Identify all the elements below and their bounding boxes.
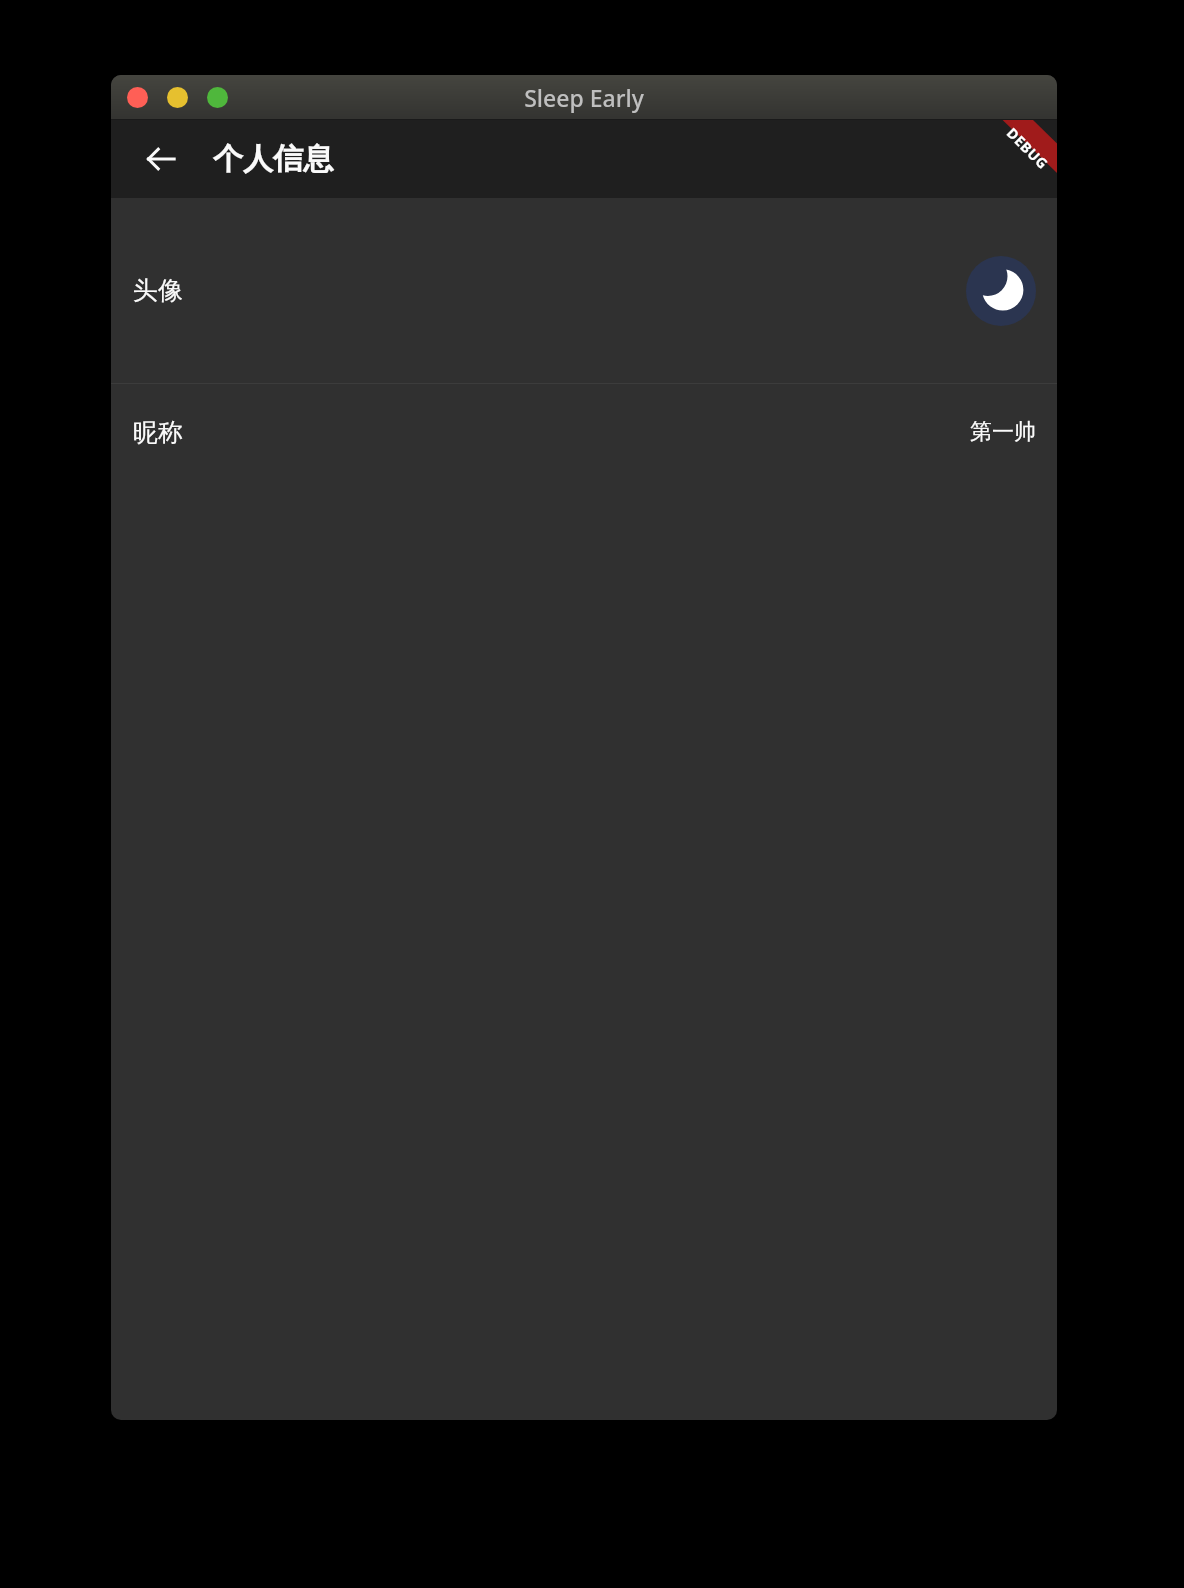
button[interactable]: Maximize [207, 87, 228, 108]
button[interactable]: Close [127, 87, 148, 108]
button[interactable]: Back [135, 133, 187, 185]
staticText: 昵称 [133, 417, 183, 448]
staticText: DEBUG [1003, 123, 1053, 174]
staticText: Sleep Early [111, 82, 1057, 113]
button[interactable]: 昵称 [111, 384, 1057, 480]
staticText: 头像 [133, 275, 183, 306]
staticText: 个人信息 [213, 140, 333, 178]
button[interactable]: 头像 [111, 198, 1057, 383]
button[interactable]: Minimize [167, 87, 188, 108]
staticText: 第一帅 [970, 418, 1036, 446]
